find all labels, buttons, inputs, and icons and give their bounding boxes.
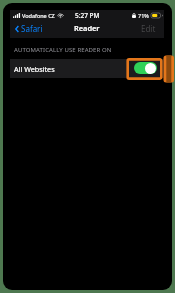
button[interactable]: Edit — [141, 23, 156, 34]
staticText: All Websites — [14, 64, 55, 74]
staticText: Vodafone CZ — [22, 12, 55, 19]
staticText: Reader — [74, 23, 100, 33]
staticText: 71% — [138, 12, 149, 19]
button[interactable]: Safari — [15, 23, 43, 34]
staticText: Safari — [21, 23, 43, 34]
button[interactable]: All Websites — [10, 59, 164, 78]
button[interactable]: Toggle All Websites — [134, 62, 157, 74]
staticText: 5:27 PM — [75, 11, 100, 20]
staticText: AUTOMATICALLY USE READER ON — [14, 46, 112, 54]
